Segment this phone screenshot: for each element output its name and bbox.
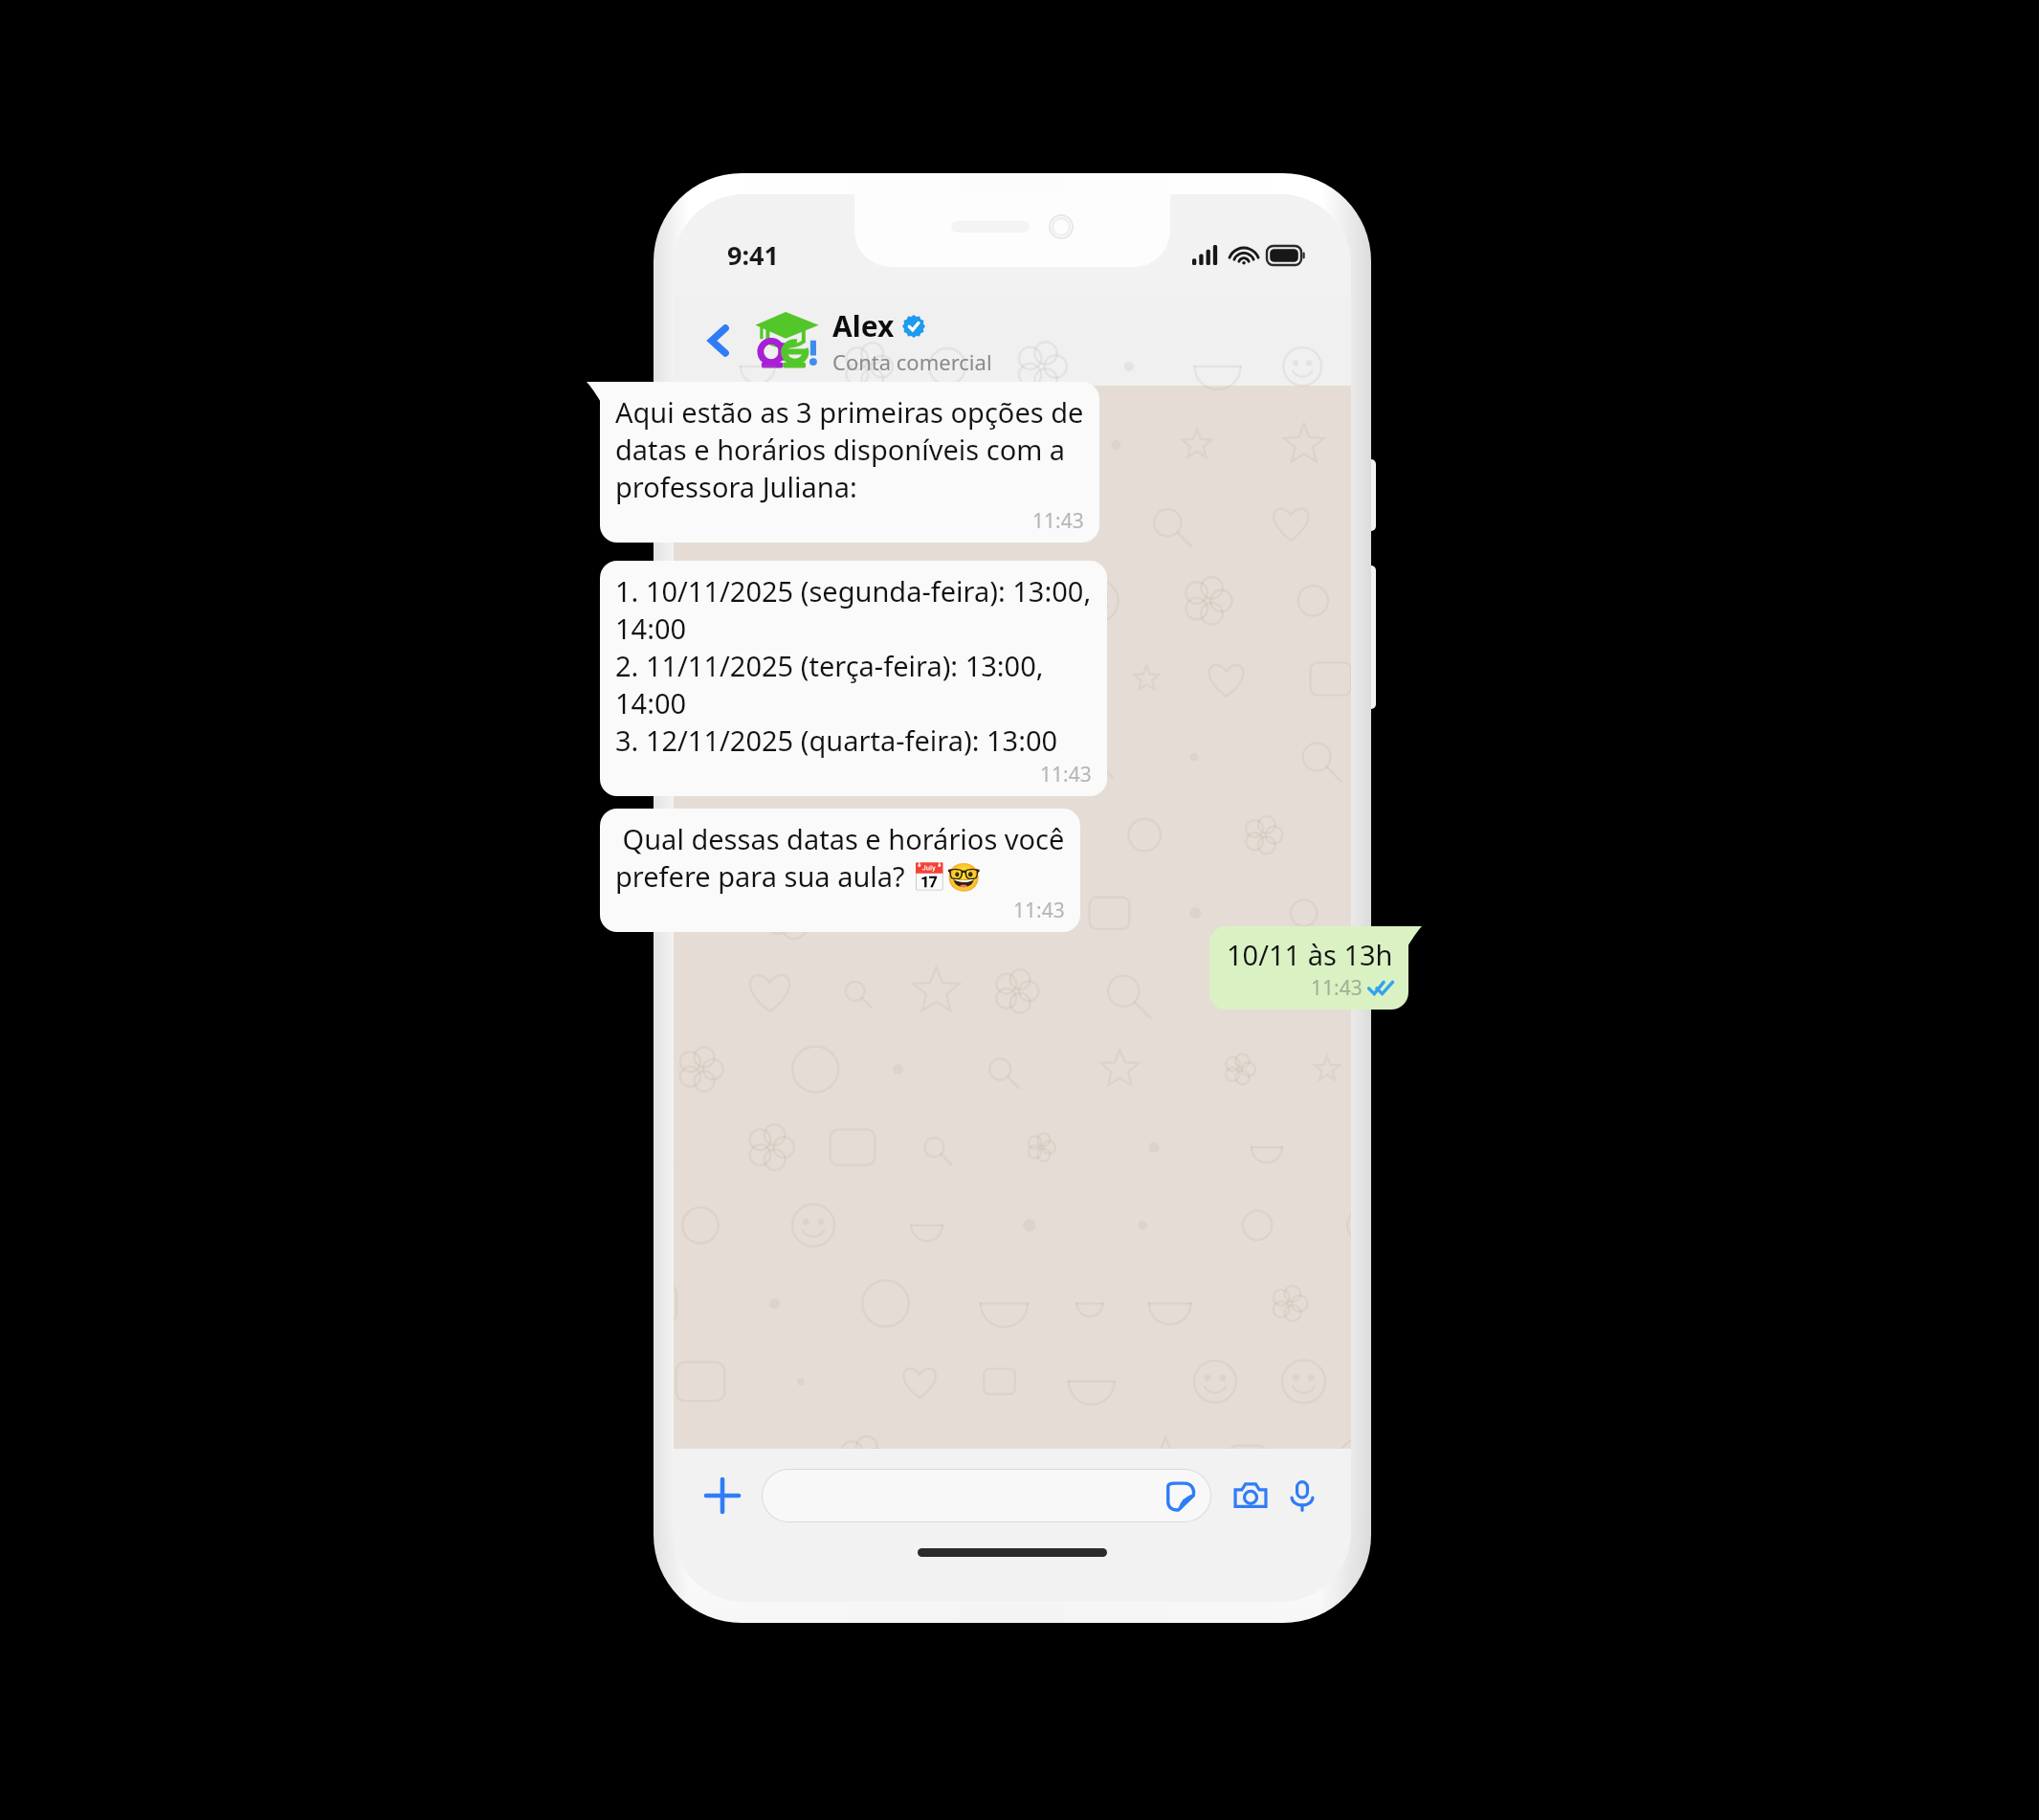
button[interactable]: 1. 10/11/2025 (segunda-feira): 13:00,: [600, 561, 1107, 796]
staticText: 14:00: [615, 684, 687, 721]
staticText: 14:00: [615, 610, 687, 647]
button[interactable]: Alex: [754, 306, 1332, 376]
button[interactable]: Voice message: [1276, 1470, 1328, 1521]
staticText: Conta comercial: [832, 347, 992, 376]
staticText: Aqui estão as 3 primeiras opções de: [615, 393, 1084, 431]
staticText: 11:43: [1040, 761, 1092, 788]
staticText: 9:41: [727, 237, 779, 273]
button[interactable]: Back: [695, 316, 744, 366]
button[interactable]: Attach: [697, 1470, 748, 1521]
button[interactable]: 10/11 às 13h: [1209, 926, 1408, 1010]
staticText: Alex: [832, 306, 895, 345]
button[interactable]: Camera: [1225, 1470, 1276, 1521]
staticText: 11:43: [1032, 507, 1084, 535]
staticText: Qual dessas datas e horários você: [615, 820, 1065, 857]
staticText: Segunda: [978, 405, 1047, 427]
staticText: 2. 11/11/2025 (terça-feira): 13:00,: [615, 647, 1044, 684]
staticText: 11:43: [1013, 897, 1065, 924]
other: Stickers: [1164, 1479, 1196, 1512]
staticText: 11:43: [1311, 974, 1363, 1002]
staticText: 3. 12/11/2025 (quarta-feira): 13:00: [615, 721, 1058, 759]
button[interactable]: Stickers: [762, 1469, 1211, 1522]
staticText: professora Juliana:: [615, 468, 857, 505]
staticText: datas e horários disponíveis com a: [615, 431, 1066, 468]
button[interactable]: Aqui estão as 3 primeiras opções de: [600, 382, 1099, 543]
staticText: prefere para sua aula? 📅🤓: [615, 857, 982, 895]
button[interactable]: Qual dessas datas e horários você: [600, 809, 1080, 932]
staticText: 1. 10/11/2025 (segunda-feira): 13:00,: [615, 572, 1092, 610]
staticText: 10/11 às 13h: [1227, 936, 1393, 973]
